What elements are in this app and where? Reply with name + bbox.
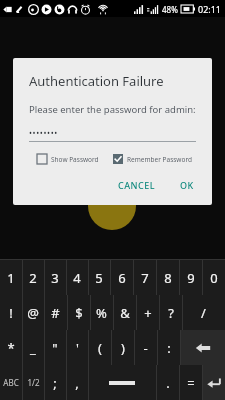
staticText: @	[27, 304, 39, 322]
button[interactable]: +	[136, 295, 159, 330]
button[interactable]: Enter	[202, 365, 225, 400]
button[interactable]: )	[111, 330, 134, 365]
staticText: 6	[118, 269, 126, 287]
staticText: 02:11	[198, 3, 222, 15]
button[interactable]: CANCEL	[112, 175, 162, 195]
button[interactable]: ABC	[0, 365, 22, 400]
staticText: OK	[180, 179, 194, 191]
button[interactable]: _	[22, 330, 44, 365]
staticText: Please enter the password for admin:	[29, 103, 196, 116]
button[interactable]: $	[67, 295, 90, 330]
staticText: :	[167, 339, 171, 357]
button[interactable]: ,	[66, 365, 88, 400]
staticText: 0	[210, 269, 218, 287]
staticText: +	[144, 304, 152, 322]
button[interactable]: 3	[44, 260, 66, 295]
staticText: *	[7, 339, 15, 357]
button[interactable]: 9	[179, 260, 202, 295]
button[interactable]: !	[0, 295, 22, 330]
button[interactable]: ?	[159, 295, 182, 330]
staticText: 5	[95, 269, 103, 287]
staticText: 3	[51, 269, 59, 287]
button[interactable]: @	[22, 295, 44, 330]
staticText: Remember Password	[127, 155, 192, 164]
button[interactable]: :	[157, 330, 180, 365]
staticText: 4	[73, 269, 81, 287]
staticText: ••••••••	[29, 127, 58, 138]
staticText: $	[75, 304, 83, 322]
staticText: CANCEL	[118, 179, 156, 191]
button[interactable]: '	[66, 330, 88, 365]
button[interactable]: (	[88, 330, 111, 365]
staticText: ABC	[3, 377, 19, 388]
staticText: )	[121, 339, 125, 357]
staticText: ?	[168, 304, 174, 322]
staticText: Show Password	[51, 155, 99, 164]
staticText: !	[9, 304, 13, 322]
button[interactable]: 5	[88, 260, 110, 295]
button[interactable]: "	[44, 330, 66, 365]
button[interactable]: OK	[174, 175, 200, 195]
staticText: ;	[53, 374, 57, 392]
button[interactable]: 4	[66, 260, 88, 295]
button[interactable]: %	[90, 295, 113, 330]
staticText: ,	[75, 374, 79, 392]
button[interactable]: ;	[44, 365, 66, 400]
button[interactable]: /	[182, 295, 225, 330]
staticText: '	[76, 339, 79, 357]
staticText: =	[187, 374, 195, 392]
button[interactable]: 8	[156, 260, 179, 295]
button[interactable]: .	[156, 365, 179, 400]
staticText: /	[201, 304, 206, 322]
button[interactable]: 0	[202, 260, 225, 295]
staticText: Authentication Failure	[29, 72, 164, 90]
staticText: #	[51, 304, 60, 322]
button[interactable]: 2	[22, 260, 44, 295]
button[interactable]: Remember Password	[113, 152, 192, 166]
staticText: 8	[164, 269, 172, 287]
staticText: 7	[141, 269, 149, 287]
staticText: .	[166, 374, 170, 392]
staticText: 1/2	[27, 377, 40, 388]
button[interactable]: &	[113, 295, 136, 330]
button[interactable]: 6	[110, 260, 133, 295]
button[interactable]: =	[179, 365, 202, 400]
staticText: -	[143, 339, 148, 357]
button[interactable]: -	[134, 330, 157, 365]
button[interactable]: Show Password	[37, 152, 99, 166]
staticText: &	[120, 304, 130, 322]
button[interactable]: 1	[0, 260, 22, 295]
staticText: _	[30, 339, 36, 357]
button[interactable]: #	[44, 295, 67, 330]
staticText: "	[52, 339, 58, 357]
staticText: 9	[187, 269, 195, 287]
staticText: %	[96, 304, 107, 322]
button[interactable]: 7	[133, 260, 156, 295]
staticText: (	[98, 339, 102, 357]
staticText: 48%	[162, 4, 178, 15]
button[interactable]: Backspace	[180, 330, 225, 365]
staticText: 1	[7, 269, 15, 287]
button[interactable]: Space	[88, 365, 156, 400]
button[interactable]: *	[0, 330, 22, 365]
staticText: 2	[29, 269, 37, 287]
button[interactable]: 1/2	[22, 365, 44, 400]
